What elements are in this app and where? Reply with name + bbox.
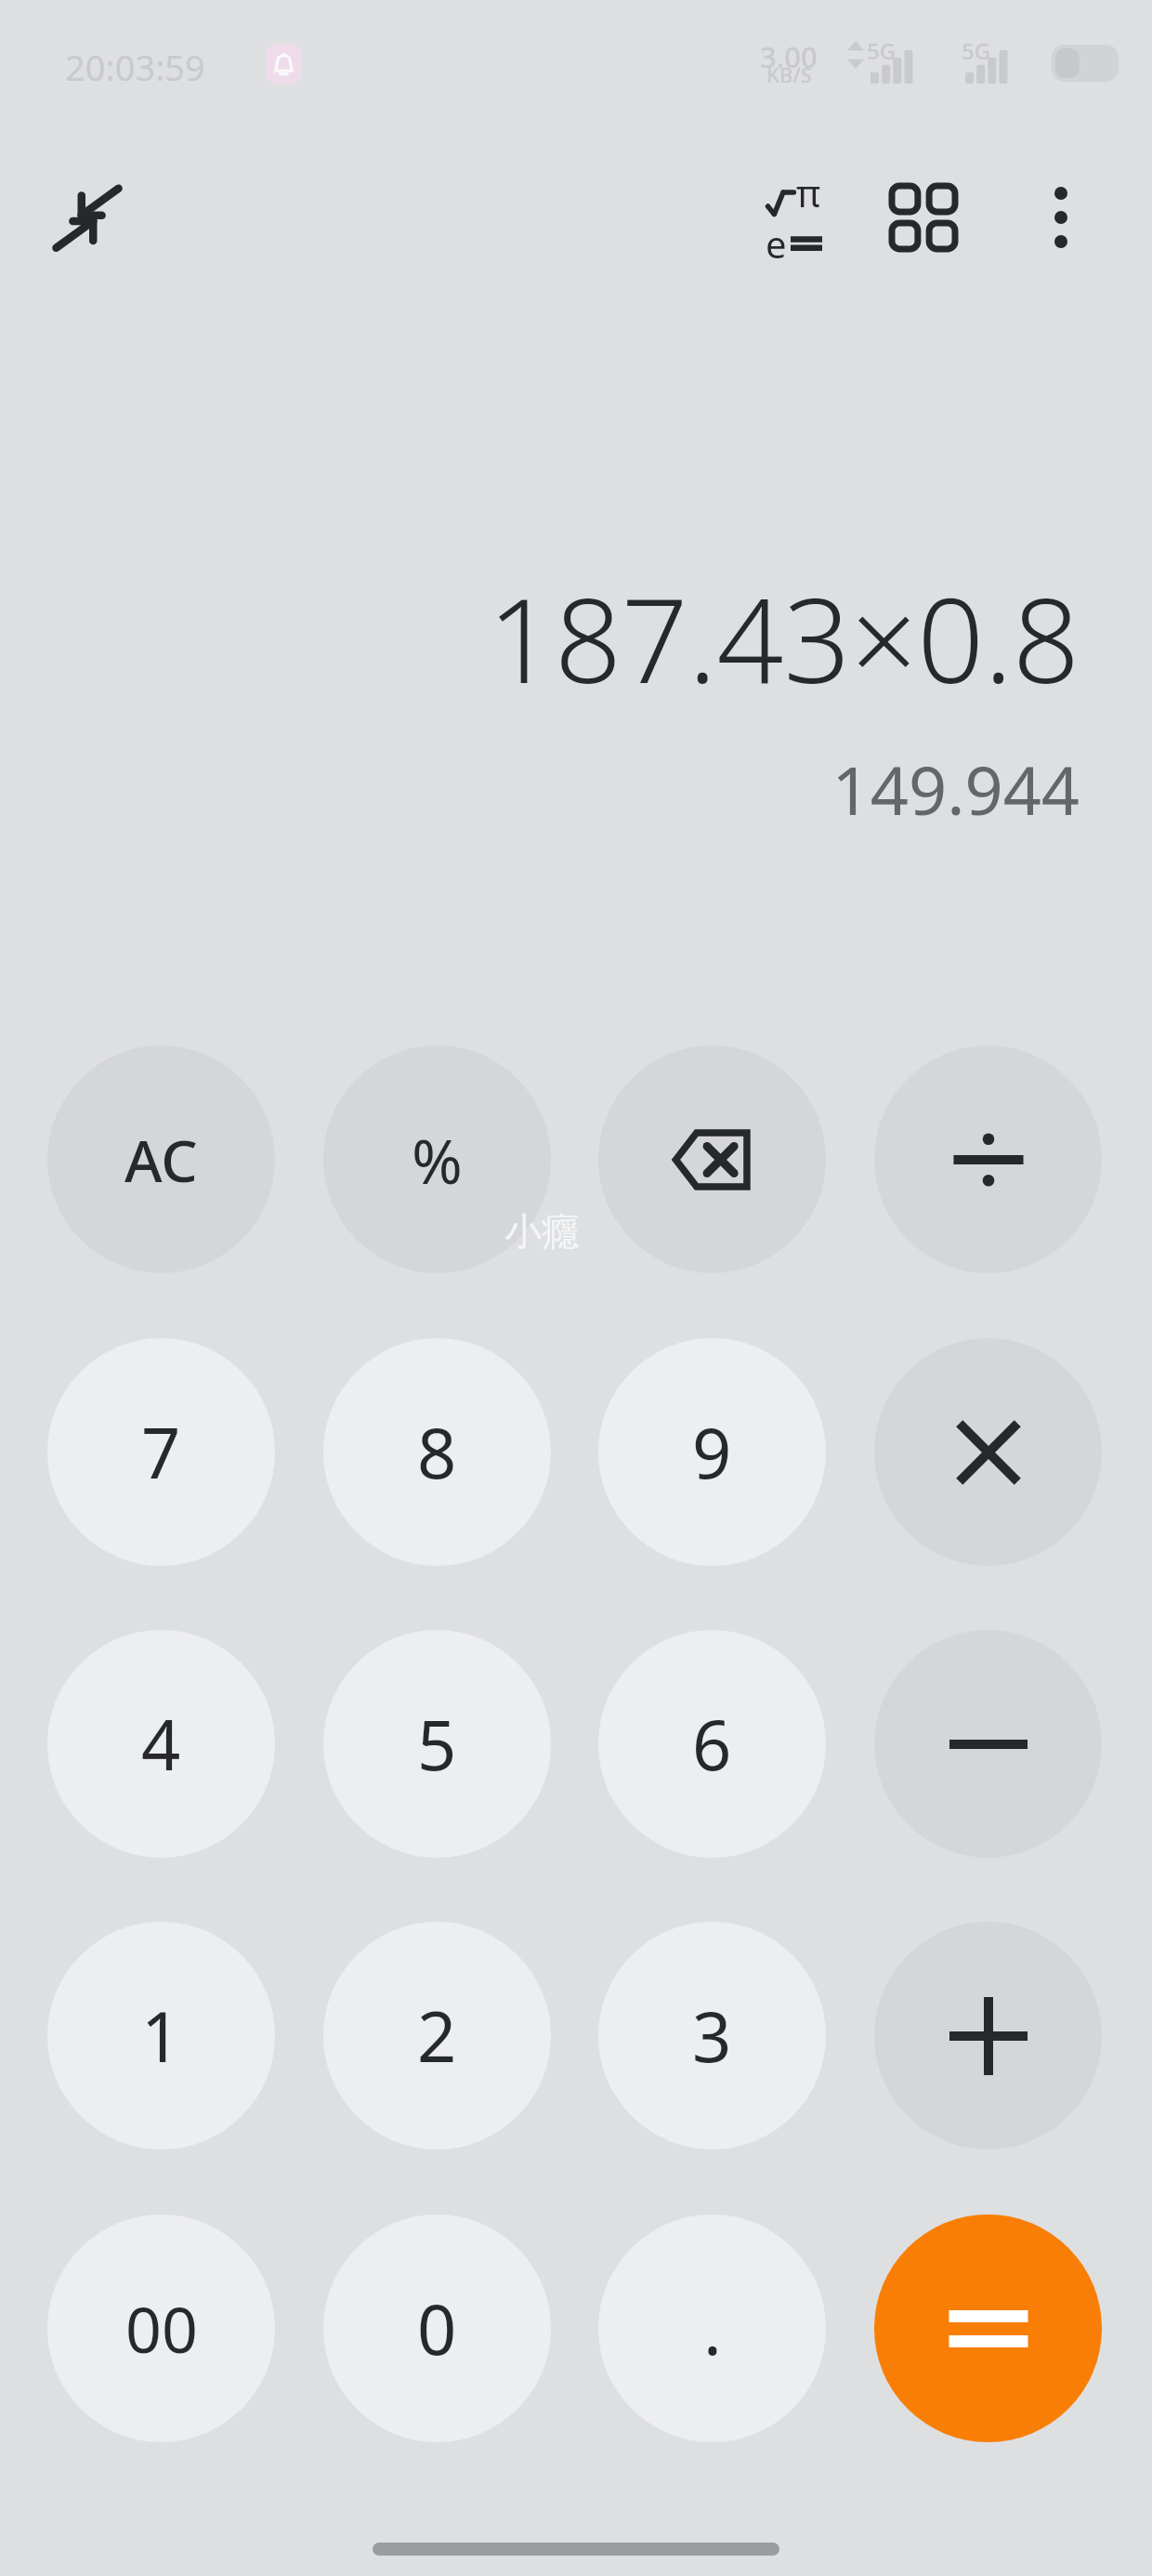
- button[interactable]: Divide: [874, 1045, 1102, 1273]
- button[interactable]: Multiply: [874, 1338, 1102, 1566]
- staticText: 3.00: [760, 37, 818, 76]
- button[interactable]: 6: [598, 1630, 826, 1858]
- button[interactable]: AC: [47, 1045, 275, 1273]
- staticText: KB/S: [766, 60, 812, 88]
- staticText: π: [796, 167, 821, 217]
- staticText: 5G: [867, 35, 897, 66]
- button[interactable]: 9: [598, 1338, 826, 1566]
- staticText: 6: [692, 1697, 732, 1791]
- button[interactable]: Backspace: [598, 1045, 826, 1273]
- staticText: .: [703, 2281, 722, 2375]
- button[interactable]: 7: [47, 1338, 275, 1566]
- staticText: 1: [141, 1989, 181, 2083]
- button[interactable]: 4: [47, 1630, 275, 1858]
- staticText: e: [766, 218, 787, 269]
- button[interactable]: Equals: [874, 2215, 1102, 2442]
- button[interactable]: 5: [323, 1630, 551, 1858]
- staticText: 20:03:59: [65, 43, 205, 91]
- button[interactable]: More options: [1009, 165, 1113, 269]
- button[interactable]: Collapse: [35, 165, 139, 269]
- button[interactable]: Scientific mode: [741, 165, 845, 269]
- staticText: 4: [141, 1697, 181, 1791]
- staticText: 149.944: [831, 743, 1080, 835]
- button[interactable]: 8: [323, 1338, 551, 1566]
- button[interactable]: 3: [598, 1922, 826, 2149]
- staticText: 7: [141, 1405, 181, 1499]
- staticText: 9: [692, 1405, 732, 1499]
- staticText: 00: [125, 2285, 198, 2372]
- staticText: %: [412, 1118, 463, 1202]
- staticText: 小癮: [504, 1208, 579, 1255]
- staticText: 187.43×0.8: [487, 558, 1080, 717]
- staticText: 2: [417, 1989, 457, 2083]
- staticText: 3: [692, 1989, 732, 2083]
- staticText: AC: [124, 1121, 198, 1199]
- staticText: 5: [417, 1697, 457, 1791]
- staticText: 0: [417, 2281, 457, 2375]
- button[interactable]: Minus: [874, 1630, 1102, 1858]
- button[interactable]: 0: [323, 2215, 551, 2442]
- staticText: 5G: [962, 35, 991, 66]
- staticText: 8: [417, 1405, 457, 1499]
- button[interactable]: Plus: [874, 1922, 1102, 2149]
- button[interactable]: 1: [47, 1922, 275, 2149]
- button[interactable]: .: [598, 2215, 826, 2442]
- button[interactable]: 00: [47, 2215, 275, 2442]
- button[interactable]: History: [871, 165, 975, 269]
- button[interactable]: %: [323, 1045, 551, 1273]
- button[interactable]: 2: [323, 1922, 551, 2149]
